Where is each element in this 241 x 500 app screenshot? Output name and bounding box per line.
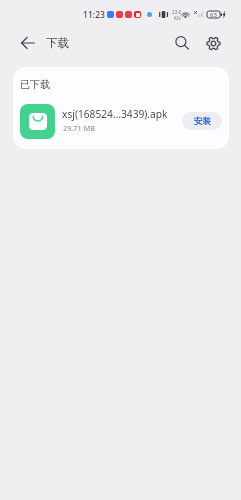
staticText: 下载: [46, 36, 69, 50]
button[interactable]: Search: [168, 29, 196, 57]
staticText: 29.71 MB: [63, 123, 95, 133]
button[interactable]: Back: [14, 29, 42, 57]
staticText: 安装: [194, 116, 211, 127]
staticText: 已下载: [20, 78, 50, 91]
staticText: 63: [210, 11, 217, 19]
button[interactable]: Settings: [199, 29, 227, 57]
staticText: 11:23: [83, 9, 106, 21]
staticText: xsj(168524…3439).apk: [62, 107, 168, 121]
staticText: K/s: [174, 15, 181, 21]
button[interactable]: 安装: [182, 112, 222, 130]
staticText: 23.6: [172, 9, 182, 15]
